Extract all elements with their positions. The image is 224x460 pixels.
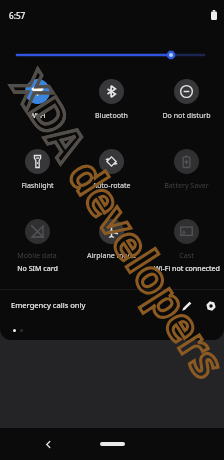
button[interactable]: Wi-Fi (0, 70, 74, 140)
staticText: Auto-rotate (92, 180, 131, 190)
staticText: 6:57 (9, 10, 26, 21)
staticText: Bluetooth (95, 110, 128, 120)
staticText: Airplane mode (87, 250, 136, 260)
button[interactable]: Airplane mode (74, 210, 149, 280)
button[interactable]: Edit tiles (176, 295, 197, 316)
staticText: Flashlight (21, 180, 54, 190)
button[interactable]: Settings (200, 295, 221, 316)
button[interactable]: Home (100, 442, 125, 446)
staticText: Emergency calls only (11, 300, 86, 310)
staticText: Cast (179, 250, 194, 260)
button[interactable]: Do not disturb (149, 70, 224, 140)
staticText: Do not disturb (162, 110, 211, 120)
button[interactable]: Back (38, 434, 58, 454)
button[interactable]: Mobile data (0, 210, 74, 280)
button[interactable]: Auto-rotate (74, 140, 149, 210)
button[interactable]: Bluetooth (74, 70, 149, 140)
button[interactable]: Flashlight (0, 140, 74, 210)
button[interactable]: Brightness (0, 44, 224, 66)
button[interactable]: Cast (149, 210, 224, 280)
staticText: Wi-Fi not connected (154, 263, 220, 273)
staticText: Mobile data (17, 250, 57, 260)
staticText: No SIM card (17, 263, 58, 273)
staticText: Battery Saver (164, 180, 209, 190)
staticText: Wi-Fi (29, 110, 46, 120)
button[interactable]: Battery Saver (149, 140, 224, 210)
